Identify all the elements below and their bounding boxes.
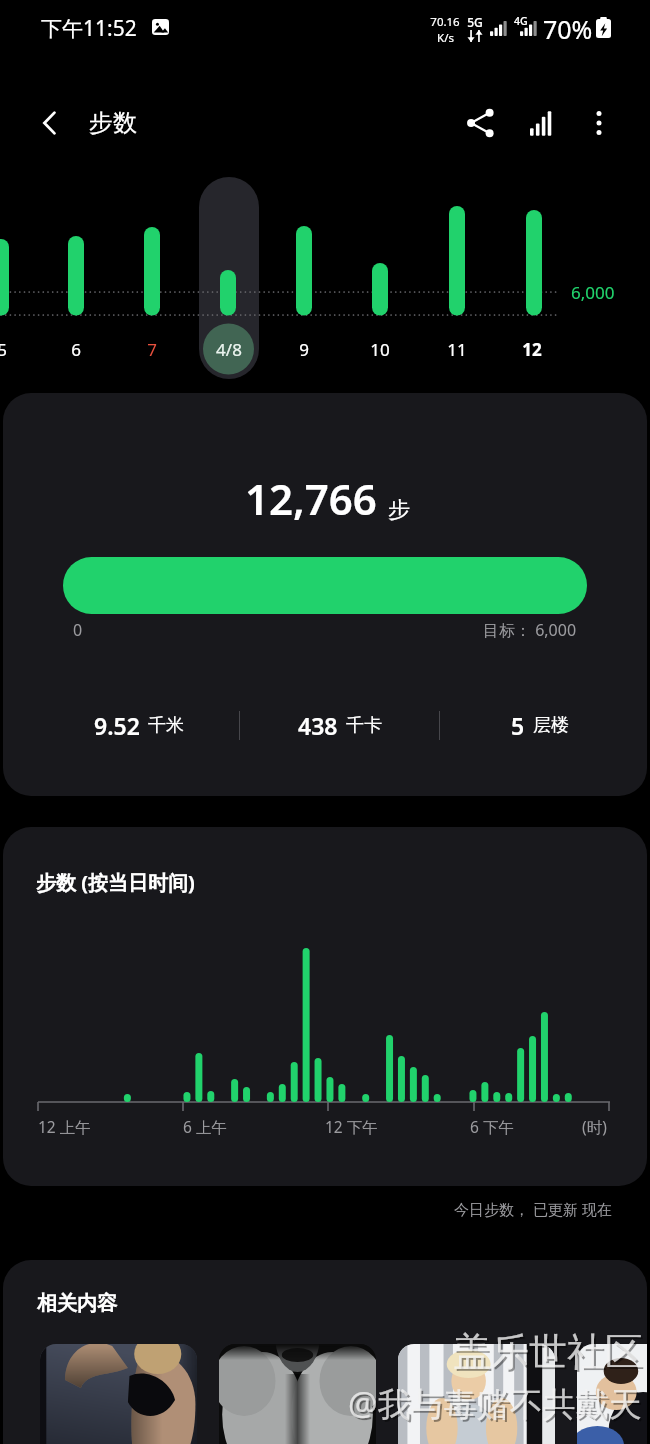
button[interactable] — [398, 1344, 555, 1444]
button[interactable]: 5 — [440, 710, 639, 741]
button[interactable]: 12,766 — [3, 393, 647, 796]
staticText: 5 — [511, 710, 525, 741]
button[interactable]: 步数 (按当日时间) — [3, 827, 647, 1186]
staticText: 10 — [370, 338, 390, 361]
staticText: (时) — [582, 1116, 607, 1137]
staticText: 6 下午 — [470, 1116, 514, 1137]
staticText: 步数 — [89, 108, 137, 138]
staticText: 5 — [0, 338, 7, 361]
staticText: 6 — [71, 338, 81, 361]
staticText: 11 — [447, 338, 467, 361]
staticText: 12 下午 — [325, 1116, 378, 1137]
staticText: 0 — [73, 619, 83, 641]
staticText: @我与毒赌不共戴天 — [348, 1381, 642, 1426]
staticText: 7 — [147, 338, 157, 361]
staticText: 盖乐世社区 — [453, 1328, 643, 1376]
staticText: 今日步数， 已更新 现在 — [454, 1199, 612, 1219]
button[interactable]: 9.52 — [39, 710, 239, 741]
staticText: @我与毒赌不共戴天 — [350, 1383, 644, 1428]
staticText: 步数 (按当日时间) — [36, 869, 195, 896]
staticText: 12 — [522, 338, 542, 361]
button[interactable]: More options — [575, 99, 623, 147]
button[interactable] — [577, 1344, 647, 1444]
button[interactable]: Chart — [517, 97, 569, 149]
staticText: 9 — [299, 338, 309, 361]
button[interactable] — [219, 1344, 376, 1444]
staticText: 下午11:52 — [41, 14, 137, 43]
staticText: 12,766 — [245, 470, 377, 527]
staticText: 70% — [543, 12, 593, 46]
staticText: 盖乐世社区 — [455, 1330, 645, 1378]
button[interactable]: 438 — [240, 710, 439, 741]
staticText: K/s — [437, 30, 454, 46]
staticText: 5G — [467, 14, 483, 30]
button[interactable]: Share — [454, 97, 506, 149]
staticText: 70.16 — [430, 14, 460, 30]
staticText: 9.52 — [94, 710, 140, 741]
button[interactable] — [40, 1344, 197, 1444]
staticText: 相关内容 — [37, 1291, 117, 1316]
staticText: 6,000 — [571, 281, 615, 304]
staticText: 438 — [298, 710, 338, 741]
staticText: 6 上午 — [183, 1116, 227, 1137]
staticText: 目标： 6,000 — [483, 619, 577, 641]
button[interactable]: Back — [26, 99, 74, 147]
staticText: 层楼 — [533, 714, 569, 737]
staticText: 12 上午 — [38, 1116, 91, 1137]
staticText: 4G — [514, 14, 528, 28]
staticText: 千米 — [148, 714, 184, 737]
staticText: 千卡 — [346, 714, 382, 737]
staticText: 4/8 — [216, 338, 242, 361]
staticText: 步 — [388, 496, 410, 524]
